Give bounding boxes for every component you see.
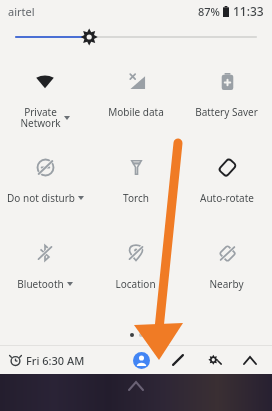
staticText: Auto-rotate [200,191,254,205]
staticText: Do not disturb [7,191,75,205]
staticText: 11:33 [233,3,264,19]
button[interactable]: Private Network [0,58,90,144]
staticText: Location [115,277,156,291]
button[interactable]: Auto-rotate [181,144,272,230]
button[interactable]: Mobile data [90,58,181,144]
button[interactable]: Bluetooth [0,230,90,316]
staticText: Private Network [20,105,61,130]
staticText: Battery Saver [195,105,258,119]
staticText: Torch [123,191,149,205]
button[interactable]: Do not disturb [0,144,90,230]
button[interactable]: Settings [202,348,226,372]
button[interactable] [0,22,272,52]
staticText: 87% [198,4,220,19]
staticText: airtel [8,4,35,19]
button[interactable]: Location [90,230,181,316]
staticText: Fri 6:30 AM [26,353,85,368]
button[interactable]: Edit tiles [166,348,190,372]
button[interactable]: Nearby [181,230,272,316]
button[interactable]: User account [128,347,154,373]
button[interactable]: Torch [90,144,181,230]
staticText: Bluetooth [17,277,64,291]
staticText: Nearby [209,277,244,291]
button[interactable]: Fri 6:30 AM [10,353,85,368]
button[interactable]: Battery Saver [181,58,272,144]
button[interactable]: Collapse [238,348,262,372]
staticText: Mobile data [108,105,164,119]
